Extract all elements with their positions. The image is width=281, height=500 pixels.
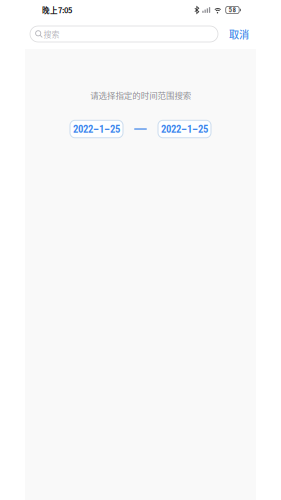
- staticText: 请选择指定的时间范围搜索: [90, 89, 191, 101]
- button[interactable]: 2022–1–25: [158, 120, 211, 138]
- staticText: 晚上7:05: [42, 4, 72, 15]
- button[interactable]: 2022–1–25: [70, 120, 123, 138]
- button[interactable]: 搜索: [30, 26, 218, 42]
- staticText: 58: [228, 6, 236, 14]
- staticText: 取消: [229, 27, 249, 41]
- button[interactable]: 取消: [226, 26, 252, 42]
- staticText: 2022–1–25: [73, 123, 120, 135]
- staticText: 搜索: [43, 28, 59, 40]
- staticText: 2022–1–25: [161, 123, 208, 135]
